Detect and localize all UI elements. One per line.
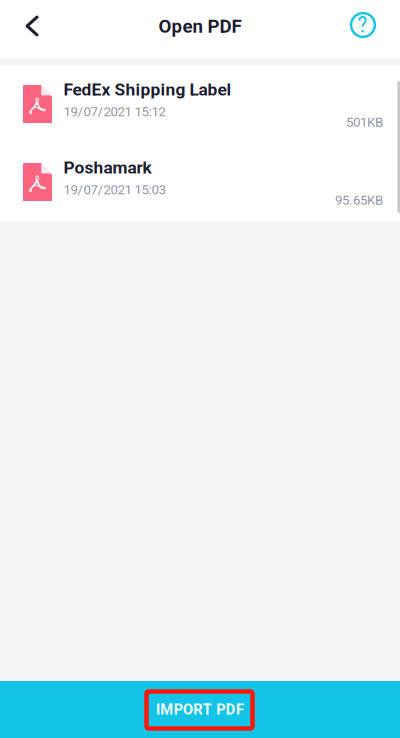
staticText: IMPORT PDF bbox=[156, 701, 244, 718]
staticText: Open PDF bbox=[158, 15, 241, 37]
staticText: 19/07/2021 15:12 bbox=[63, 104, 165, 119]
staticText: 501KB bbox=[346, 114, 383, 130]
button[interactable]: Poshamark bbox=[0, 143, 400, 221]
button[interactable]: FedEx Shipping Label bbox=[0, 65, 400, 143]
staticText: 95.65KB bbox=[335, 192, 383, 208]
staticText: FedEx Shipping Label bbox=[63, 79, 231, 100]
button[interactable]: Help bbox=[341, 3, 385, 47]
button[interactable]: Back bbox=[10, 3, 54, 47]
button[interactable]: IMPORT PDF bbox=[0, 681, 400, 738]
staticText: Poshamark bbox=[63, 157, 151, 178]
staticText: 19/07/2021 15:03 bbox=[63, 182, 165, 197]
